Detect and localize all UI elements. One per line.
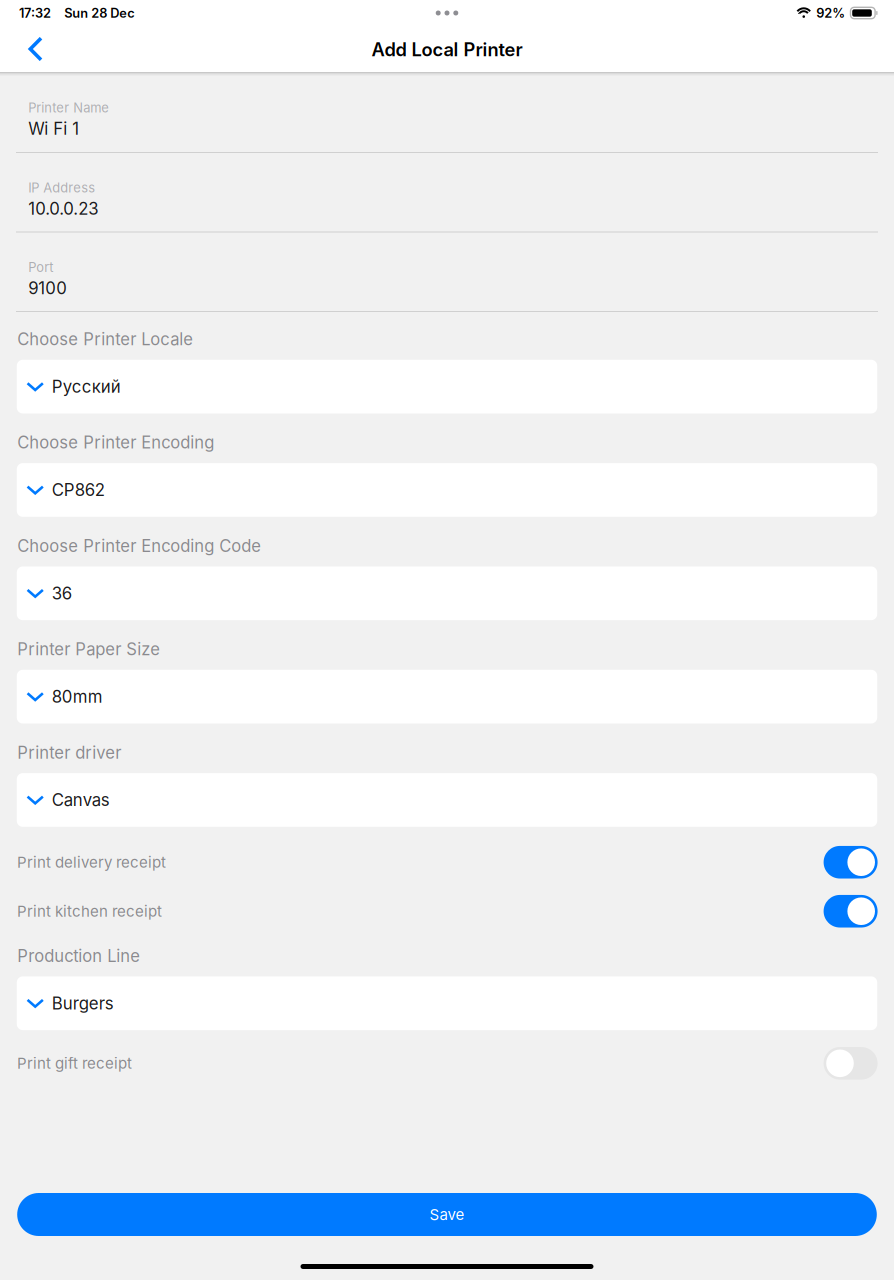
staticText: Print delivery receipt (17, 853, 166, 871)
staticText: 92% (816, 5, 845, 21)
button[interactable]: Printer Name (0, 73, 894, 153)
button[interactable]: 80mm (0, 670, 894, 723)
staticText: 17:32 (19, 5, 51, 21)
button[interactable]: Print gift receipt (0, 1039, 894, 1088)
button[interactable]: Port (0, 232, 894, 312)
button[interactable]: Print kitchen receipt (0, 887, 894, 936)
staticText: Sun 28 Dec (64, 5, 134, 21)
staticText: Choose Printer Encoding (17, 432, 214, 453)
staticText: Print gift receipt (17, 1054, 132, 1072)
button[interactable]: Burgers (0, 976, 894, 1030)
staticText: CP862 (52, 480, 105, 500)
staticText: Printer driver (17, 742, 121, 763)
staticText: IP Address (28, 180, 95, 196)
button[interactable]: Русский (0, 360, 894, 413)
button[interactable]: Save (0, 1193, 894, 1236)
button[interactable]: CP862 (0, 463, 894, 517)
staticText: Add Local Printer (371, 38, 522, 61)
staticText: Printer Paper Size (17, 639, 160, 659)
staticText: Production Line (17, 946, 140, 966)
staticText: Save (429, 1205, 464, 1224)
staticText: Wi Fi 1 (28, 118, 79, 139)
button[interactable]: Canvas (0, 773, 894, 827)
staticText: Русский (52, 376, 121, 397)
staticText: 36 (52, 583, 72, 603)
staticText: Canvas (52, 790, 110, 810)
staticText: Printer Name (28, 100, 109, 116)
staticText: Print kitchen receipt (17, 902, 162, 920)
button[interactable]: IP Address (0, 153, 894, 232)
button[interactable]: Back (0, 26, 59, 72)
button[interactable]: Print delivery receipt (0, 838, 894, 887)
staticText: Choose Printer Encoding Code (17, 536, 261, 556)
staticText: 10.0.0.23 (28, 198, 98, 219)
staticText: Burgers (52, 993, 114, 1013)
staticText: 80mm (52, 686, 103, 707)
staticText: Port (28, 259, 53, 275)
staticText: 9100 (28, 278, 67, 298)
staticText: Choose Printer Locale (17, 329, 193, 349)
button[interactable]: 36 (0, 566, 894, 620)
